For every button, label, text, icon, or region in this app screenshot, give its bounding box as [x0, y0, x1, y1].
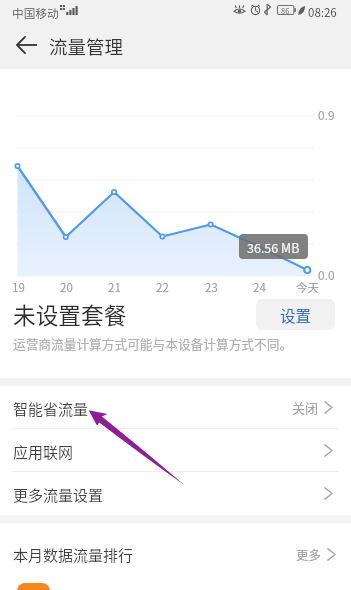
staticText: 中国移动: [12, 4, 59, 21]
button[interactable]: Back: [3, 21, 49, 69]
staticText: 更多: [296, 545, 322, 563]
staticText: 更多流量设置: [13, 484, 104, 506]
staticText: 22: [156, 279, 169, 296]
staticText: 36.56 MB: [247, 238, 300, 256]
staticText: 未设置套餐: [13, 298, 127, 331]
button[interactable]: 设置: [256, 299, 335, 330]
staticText: 23: [205, 279, 218, 296]
staticText: 智能省流量: [13, 398, 89, 420]
button[interactable]: 应用联网: [0, 429, 351, 472]
staticText: 今天: [296, 279, 319, 296]
staticText: 08:26: [308, 4, 337, 21]
staticText: 0.0: [318, 266, 335, 283]
staticText: 应用联网: [13, 441, 74, 463]
staticText: 0.9: [318, 106, 335, 123]
staticText: 24: [253, 279, 266, 296]
staticText: 19: [12, 279, 25, 296]
staticText: 21: [108, 279, 121, 296]
staticText: 流量管理: [49, 33, 124, 60]
staticText: 设置: [280, 304, 312, 326]
button[interactable]: 更多流量设置: [0, 472, 351, 515]
staticText: 本月数据流量排行: [13, 544, 134, 566]
staticText: 关闭: [292, 398, 319, 417]
button[interactable]: 智能省流量: [0, 386, 351, 429]
staticText: 运营商流量计算方式可能与本设备计算方式不同。: [13, 334, 293, 352]
button[interactable]: 本月数据流量排行: [0, 523, 351, 574]
staticText: 86: [281, 5, 290, 15]
staticText: 20: [60, 279, 73, 296]
